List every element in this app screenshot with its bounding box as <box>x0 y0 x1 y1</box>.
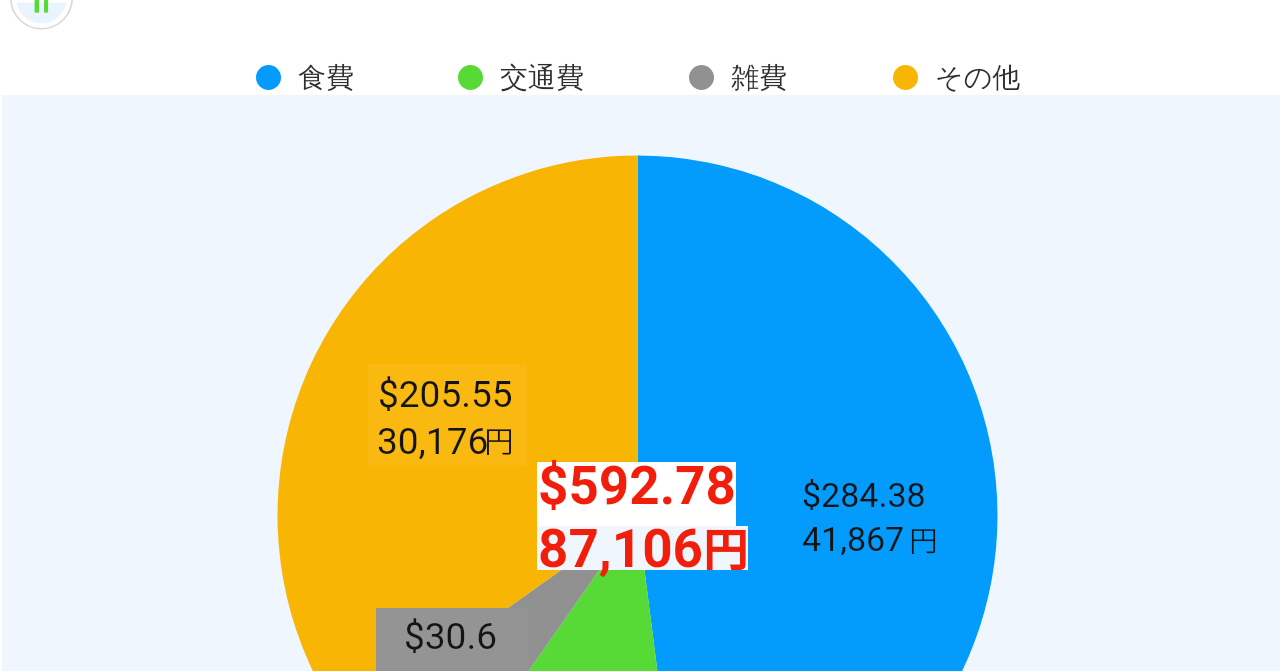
staticText: 交通費 <box>500 60 584 95</box>
button[interactable]: 雑費 <box>689 60 787 95</box>
staticText: $30.6 <box>404 615 497 658</box>
staticText: $592.78 <box>538 455 736 517</box>
button[interactable]: Food category <box>10 0 73 27</box>
button[interactable]: その他 <box>893 60 1021 95</box>
staticText: 41,867 <box>802 519 905 559</box>
button[interactable]: 食費 <box>256 60 354 95</box>
button[interactable]: 交通費 <box>458 60 584 95</box>
staticText: $205.55 <box>378 373 513 416</box>
staticText: 円 <box>909 521 939 564</box>
staticText: 円 <box>484 421 514 466</box>
staticText: その他 <box>935 60 1021 95</box>
staticText: 30,176 <box>377 420 489 463</box>
staticText: 円 <box>703 518 749 587</box>
staticText: 食費 <box>298 60 354 95</box>
staticText: $284.38 <box>802 475 926 515</box>
staticText: 87,106 <box>538 518 704 580</box>
staticText: 雑費 <box>731 60 787 95</box>
